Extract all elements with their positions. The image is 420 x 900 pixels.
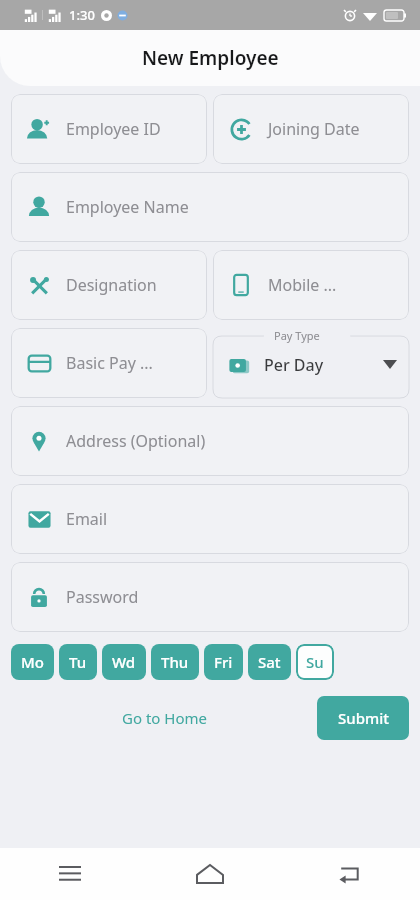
staticText: Employee ID (66, 118, 161, 140)
staticText: Basic Pay ... (66, 352, 153, 374)
staticText: Per Day (264, 354, 324, 376)
button[interactable]: Basic Pay ... (11, 328, 207, 398)
staticText: Fri (214, 652, 233, 672)
button[interactable]: Mobile ... (213, 250, 409, 320)
staticText: Pay Type (274, 328, 320, 343)
button[interactable]: Sat (248, 644, 291, 680)
button[interactable]: Employee ID (11, 94, 207, 164)
button[interactable]: Password (11, 562, 409, 632)
button[interactable]: Wd (102, 644, 146, 680)
button[interactable]: Email (11, 484, 409, 554)
button[interactable]: Address (Optional) (11, 406, 409, 476)
staticText: Designation (66, 274, 157, 296)
staticText: New Employee (142, 45, 279, 71)
staticText: Password (66, 586, 139, 608)
button[interactable]: Recents (0, 848, 140, 900)
button[interactable]: Thu (151, 644, 199, 680)
staticText: Address (Optional) (66, 430, 206, 452)
staticText: Mobile ... (268, 274, 337, 296)
button[interactable]: Su (296, 644, 334, 680)
staticText: Tu (69, 652, 87, 672)
button[interactable]: Tu (59, 644, 97, 680)
button[interactable]: Submit (317, 696, 409, 740)
button[interactable]: Employee Name (11, 172, 409, 242)
staticText: Go to Home (122, 708, 207, 728)
staticText: Sat (258, 652, 281, 672)
button[interactable]: Fri (204, 644, 243, 680)
staticText: Wd (112, 652, 136, 672)
staticText: 1:30 (69, 6, 95, 24)
button[interactable]: Back (280, 848, 420, 900)
button[interactable]: Designation (11, 250, 207, 320)
staticText: Joining Date (268, 118, 360, 140)
button[interactable]: Per Day (213, 331, 409, 398)
button[interactable]: Home (140, 848, 280, 900)
staticText: Thu (161, 652, 189, 672)
button[interactable]: Mo (11, 644, 54, 680)
button[interactable]: Joining Date (213, 94, 409, 164)
button[interactable]: Go to Home (11, 694, 317, 742)
staticText: Email (66, 508, 108, 530)
staticText: Mo (21, 652, 44, 672)
staticText: Su (306, 652, 324, 672)
staticText: Submit (338, 708, 389, 728)
staticText: Employee Name (66, 196, 189, 218)
